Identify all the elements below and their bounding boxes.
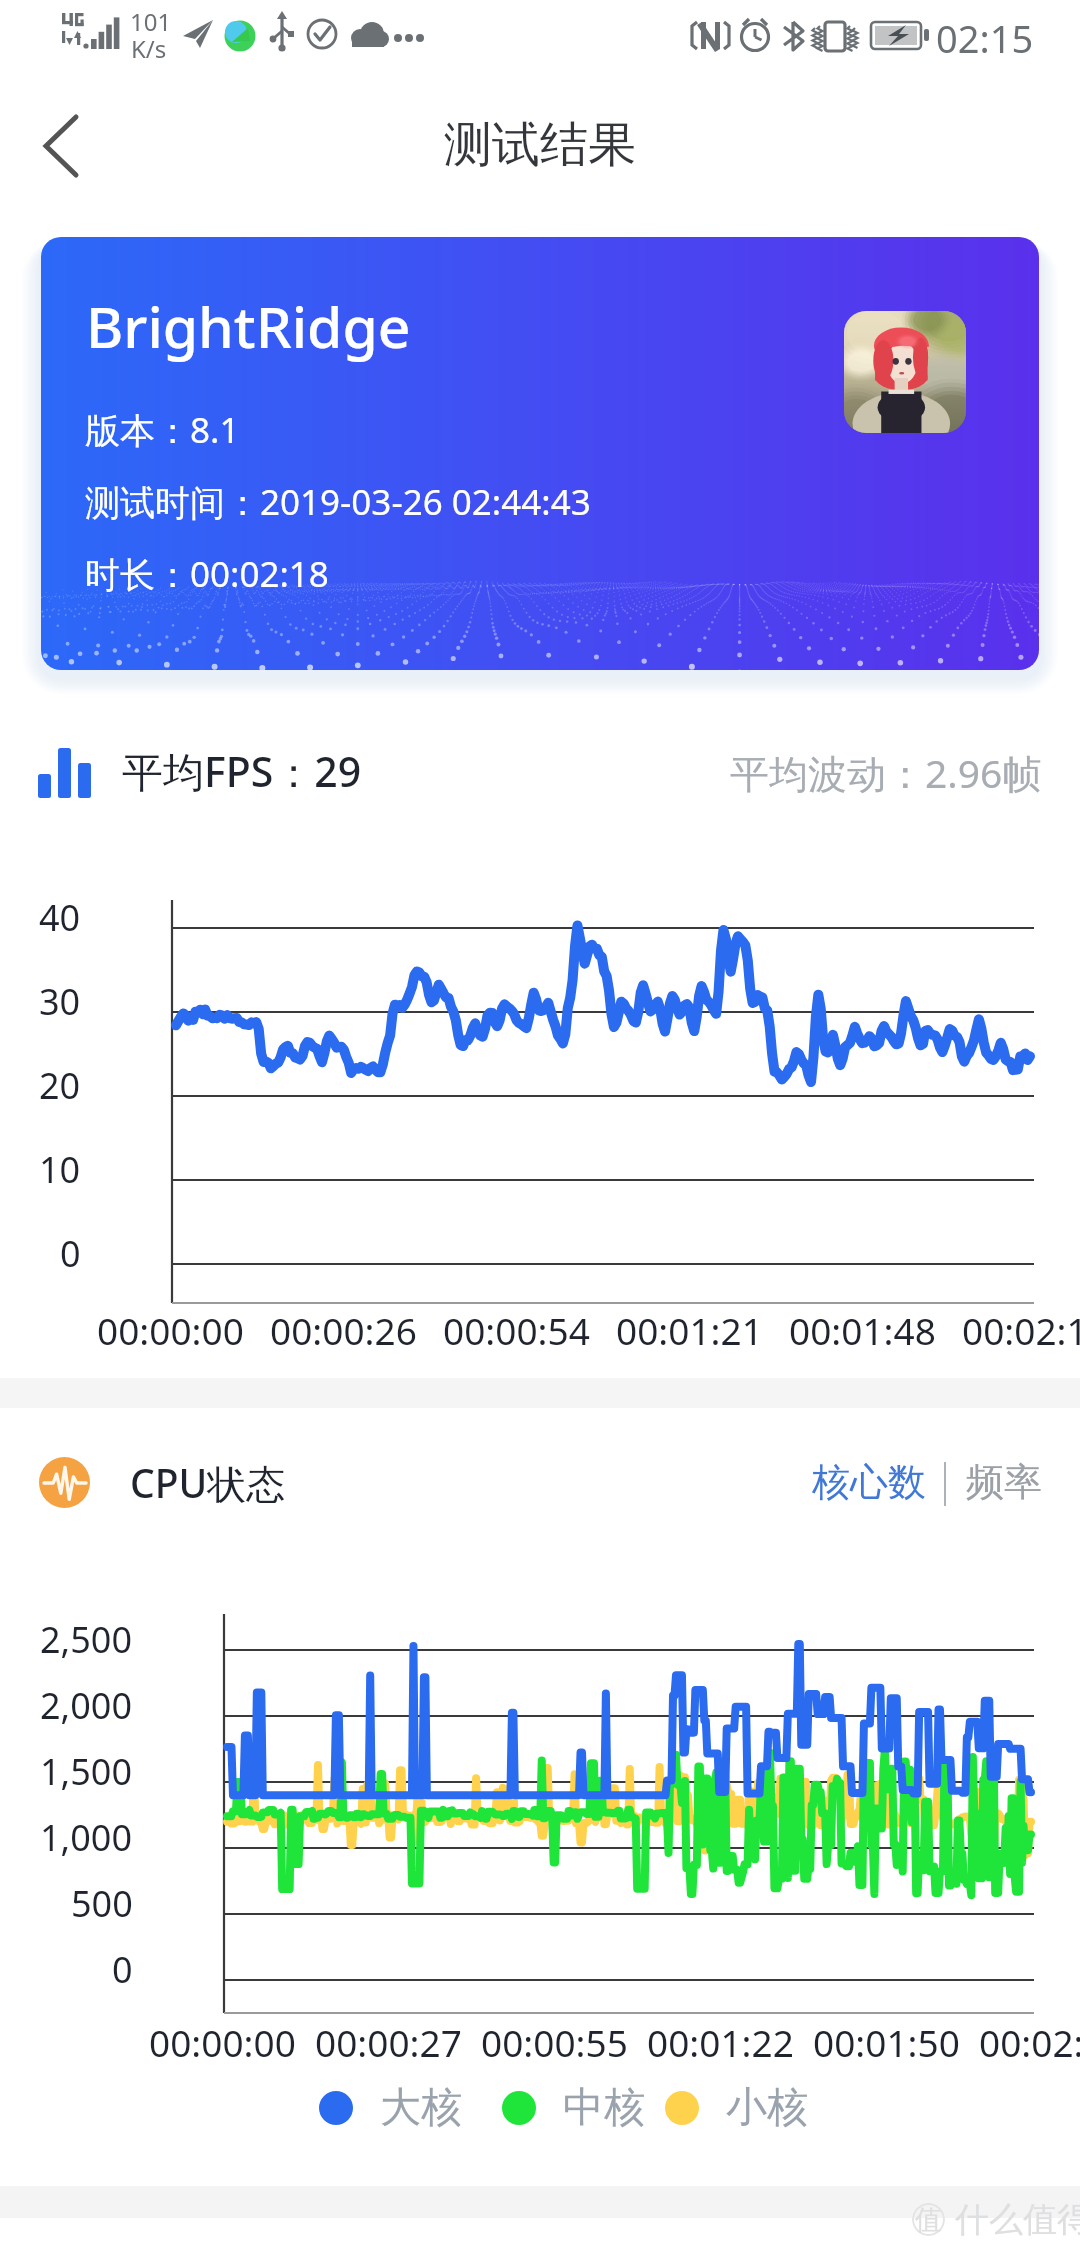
staticText: 0 bbox=[112, 1945, 133, 1994]
staticText: 时长：00:02:18 bbox=[85, 550, 329, 598]
staticText: 00:01:50 bbox=[813, 2017, 960, 2067]
staticText: 20 bbox=[39, 1061, 81, 1110]
staticText: 00:00:54 bbox=[443, 1305, 590, 1355]
button[interactable]: 核心数 bbox=[802, 1452, 936, 1512]
staticText: 2,000 bbox=[40, 1681, 133, 1730]
staticText: 平均FPS：29 bbox=[122, 743, 362, 799]
staticText: 00:01:21 bbox=[616, 1305, 763, 1355]
staticText: 测试结果 bbox=[444, 115, 636, 175]
staticText: 中核 bbox=[563, 2082, 645, 2134]
button[interactable]: 频率 bbox=[956, 1452, 1052, 1512]
staticText: 1,000 bbox=[40, 1813, 133, 1862]
staticText: 1,500 bbox=[40, 1747, 133, 1796]
staticText: 测试时间：2019-03-26 02:44:43 bbox=[85, 478, 591, 526]
staticText: 101 bbox=[130, 5, 172, 38]
button[interactable]: BrightRidge bbox=[41, 237, 1039, 670]
staticText: 平均波动：2.96帧 bbox=[730, 746, 1042, 799]
staticText: 00:00:26 bbox=[270, 1305, 417, 1355]
staticText: 500 bbox=[71, 1879, 133, 1928]
staticText: BrightRidge bbox=[86, 287, 411, 365]
staticText: 核心数 bbox=[812, 1458, 926, 1506]
staticText: CPU状态 bbox=[130, 1456, 286, 1509]
staticText: 00:01:22 bbox=[647, 2017, 794, 2067]
staticText: 00:02:1 bbox=[979, 2017, 1080, 2067]
staticText: 大核 bbox=[380, 2082, 462, 2134]
staticText: 00:01:48 bbox=[789, 1305, 936, 1355]
staticText: 02:15 bbox=[936, 12, 1034, 64]
staticText: 00:00:55 bbox=[481, 2017, 628, 2067]
staticText: 小核 bbox=[726, 2082, 808, 2134]
staticText: 10 bbox=[39, 1145, 81, 1194]
staticText: 00:02:1 bbox=[962, 1305, 1080, 1355]
button[interactable]: 小核 bbox=[665, 2082, 808, 2134]
staticText: 2,500 bbox=[40, 1615, 133, 1664]
button[interactable]: 大核 bbox=[319, 2082, 462, 2134]
staticText: 0 bbox=[60, 1229, 81, 1278]
staticText: 40 bbox=[39, 893, 81, 942]
button[interactable]: 中核 bbox=[502, 2082, 645, 2134]
staticText: K/s bbox=[131, 32, 167, 65]
staticText: 00:00:00 bbox=[97, 1305, 244, 1355]
staticText: 版本：8.1 bbox=[85, 406, 240, 454]
staticText: 频率 bbox=[966, 1458, 1042, 1506]
staticText: 00:00:27 bbox=[315, 2017, 462, 2067]
staticText: 00:00:00 bbox=[149, 2017, 296, 2067]
staticText: 值 bbox=[915, 2203, 942, 2236]
button[interactable]: Back bbox=[6, 80, 118, 192]
staticText: 什么值得买 bbox=[955, 2198, 1080, 2241]
staticText: 30 bbox=[39, 977, 81, 1026]
